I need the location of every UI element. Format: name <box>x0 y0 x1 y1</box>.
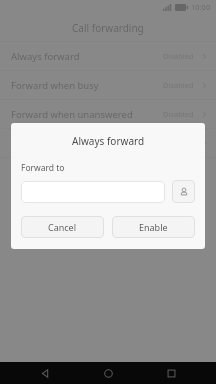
staticText: Always forward <box>72 134 145 148</box>
button[interactable]: Back <box>27 362 63 384</box>
staticText: Call forwarding <box>72 21 144 35</box>
staticText: Disabled <box>163 80 194 90</box>
button[interactable]: Choose contact <box>172 180 195 203</box>
staticText: Disabled <box>163 51 194 61</box>
staticText: Forward when busy <box>11 79 99 92</box>
button[interactable]: Forward when unanswered <box>0 100 216 128</box>
staticText: Disabled <box>163 109 194 119</box>
staticText: Forward when unanswered <box>11 108 133 121</box>
button[interactable]: Forward to number <box>21 181 165 203</box>
staticText: 10:00 <box>191 2 211 12</box>
button[interactable]: Enable <box>112 216 195 238</box>
staticText: Enable <box>139 221 168 233</box>
staticText: Forward when unreachable <box>11 137 134 150</box>
button[interactable]: Home <box>90 362 126 384</box>
button[interactable]: Recent apps <box>153 362 189 384</box>
staticText: Forward to <box>21 162 65 174</box>
staticText: Always forward <box>11 50 80 63</box>
button[interactable]: Always forward <box>0 42 216 70</box>
staticText: Cancel <box>48 221 77 233</box>
button[interactable]: Cancel <box>21 216 104 238</box>
button[interactable]: Forward when unreachable <box>0 129 216 157</box>
button[interactable]: Forward when busy <box>0 71 216 99</box>
